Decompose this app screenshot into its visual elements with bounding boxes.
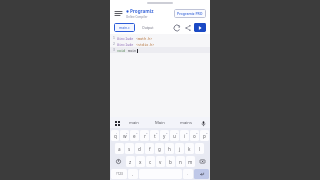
staticText: . [187, 171, 189, 177]
staticText: main.c [119, 25, 130, 30]
staticText: 5 [156, 131, 158, 134]
button[interactable]: u [170, 130, 179, 141]
button[interactable]: z [126, 156, 135, 167]
staticText: j [179, 146, 181, 152]
staticText: #include [117, 42, 136, 47]
button[interactable]: x [136, 156, 145, 167]
button[interactable]: w [120, 130, 129, 141]
staticText: Programiz PRO [177, 11, 203, 16]
staticText: m [188, 159, 193, 165]
staticText: w [123, 133, 127, 139]
button[interactable]: v [156, 156, 165, 167]
staticText: n [179, 159, 182, 165]
button[interactable]: m [186, 156, 195, 167]
staticText: u [173, 133, 176, 139]
staticText: a [118, 146, 121, 152]
staticText: 3 [113, 48, 115, 52]
button[interactable]: q [111, 130, 119, 141]
button[interactable]: main [121, 117, 147, 128]
button[interactable]: Enter [194, 169, 209, 179]
staticText: q [114, 133, 117, 139]
staticText: #include [117, 36, 136, 41]
button[interactable]: k [185, 143, 194, 154]
button[interactable]: b [166, 156, 175, 167]
staticText: v [159, 159, 162, 165]
staticText: h [168, 146, 171, 152]
button[interactable]: Keyboard toolbar [113, 119, 121, 127]
staticText: , [132, 171, 134, 177]
staticText: t [154, 133, 156, 139]
staticText: main [128, 48, 137, 53]
button[interactable]: Share [183, 23, 192, 32]
staticText: b [169, 159, 172, 165]
staticText: o [193, 133, 196, 139]
staticText: 2 [126, 131, 128, 134]
button[interactable]: n [176, 156, 185, 167]
button[interactable]: ?123 [111, 169, 127, 179]
staticText: 1 [113, 36, 115, 40]
button[interactable]: 1 [110, 35, 210, 41]
button[interactable]: g [155, 143, 164, 154]
button[interactable]: 2 [110, 41, 210, 47]
staticText: 8 [186, 131, 188, 134]
button[interactable]: s [125, 143, 134, 154]
button[interactable]: l [195, 143, 204, 154]
staticText: 7 [176, 131, 178, 134]
button[interactable]: , [128, 169, 138, 179]
button[interactable]: Main [147, 117, 173, 128]
staticText: k [188, 146, 191, 152]
staticText: 4 [146, 131, 148, 134]
button[interactable]: a [115, 143, 124, 154]
button[interactable]: h [165, 143, 174, 154]
button[interactable]: main.c [114, 23, 135, 32]
staticText: 9 [196, 131, 198, 134]
button[interactable]: t [150, 130, 159, 141]
button[interactable]: d [135, 143, 144, 154]
button[interactable]: o [190, 130, 199, 141]
button[interactable]: r [140, 130, 149, 141]
button[interactable]: Reset code [172, 23, 181, 32]
button[interactable]: mains [173, 117, 199, 128]
button[interactable]: Output [138, 23, 158, 32]
staticText: <math.h> [136, 36, 153, 41]
staticText: c [149, 159, 152, 165]
button[interactable]: Backspace [196, 156, 209, 167]
staticText: 1 [116, 131, 118, 134]
staticText: Online Compiler [126, 15, 148, 19]
staticText: x [139, 159, 142, 165]
button[interactable]: Address bar [110, 0, 210, 6]
staticText: <stdio.h> [136, 42, 155, 47]
staticText: 6 [166, 131, 168, 134]
button[interactable]: p [200, 130, 209, 141]
button[interactable]: 3 [110, 47, 210, 53]
staticText: g [158, 146, 161, 152]
staticText: 0 [206, 131, 208, 134]
button[interactable]: Menu [114, 9, 123, 18]
staticText: e [133, 133, 136, 139]
staticText: ?123 [116, 172, 123, 176]
button[interactable]: Voice input [199, 119, 207, 127]
button[interactable]: e [130, 130, 139, 141]
button[interactable]: . [183, 169, 193, 179]
button[interactable]: i [180, 130, 189, 141]
staticText: i [184, 133, 186, 139]
button[interactable]: Programiz PRO [174, 9, 206, 18]
staticText: main [129, 120, 139, 126]
staticText: y [163, 133, 166, 139]
staticText: Main [155, 120, 165, 126]
button[interactable]: c [146, 156, 155, 167]
button[interactable]: j [175, 143, 184, 154]
button[interactable]: f [145, 143, 154, 154]
staticText: Output [142, 25, 154, 30]
button[interactable]: Shift [111, 156, 125, 167]
staticText: s [128, 146, 131, 152]
staticText: l [199, 146, 201, 152]
button[interactable]: y [160, 130, 169, 141]
staticText: p [203, 133, 206, 139]
staticText: 3 [136, 131, 138, 134]
staticText: Programiz [130, 8, 154, 14]
button[interactable]: Programiz home [126, 8, 154, 19]
staticText: 2 [113, 42, 115, 46]
button[interactable]: Run code [194, 23, 206, 32]
